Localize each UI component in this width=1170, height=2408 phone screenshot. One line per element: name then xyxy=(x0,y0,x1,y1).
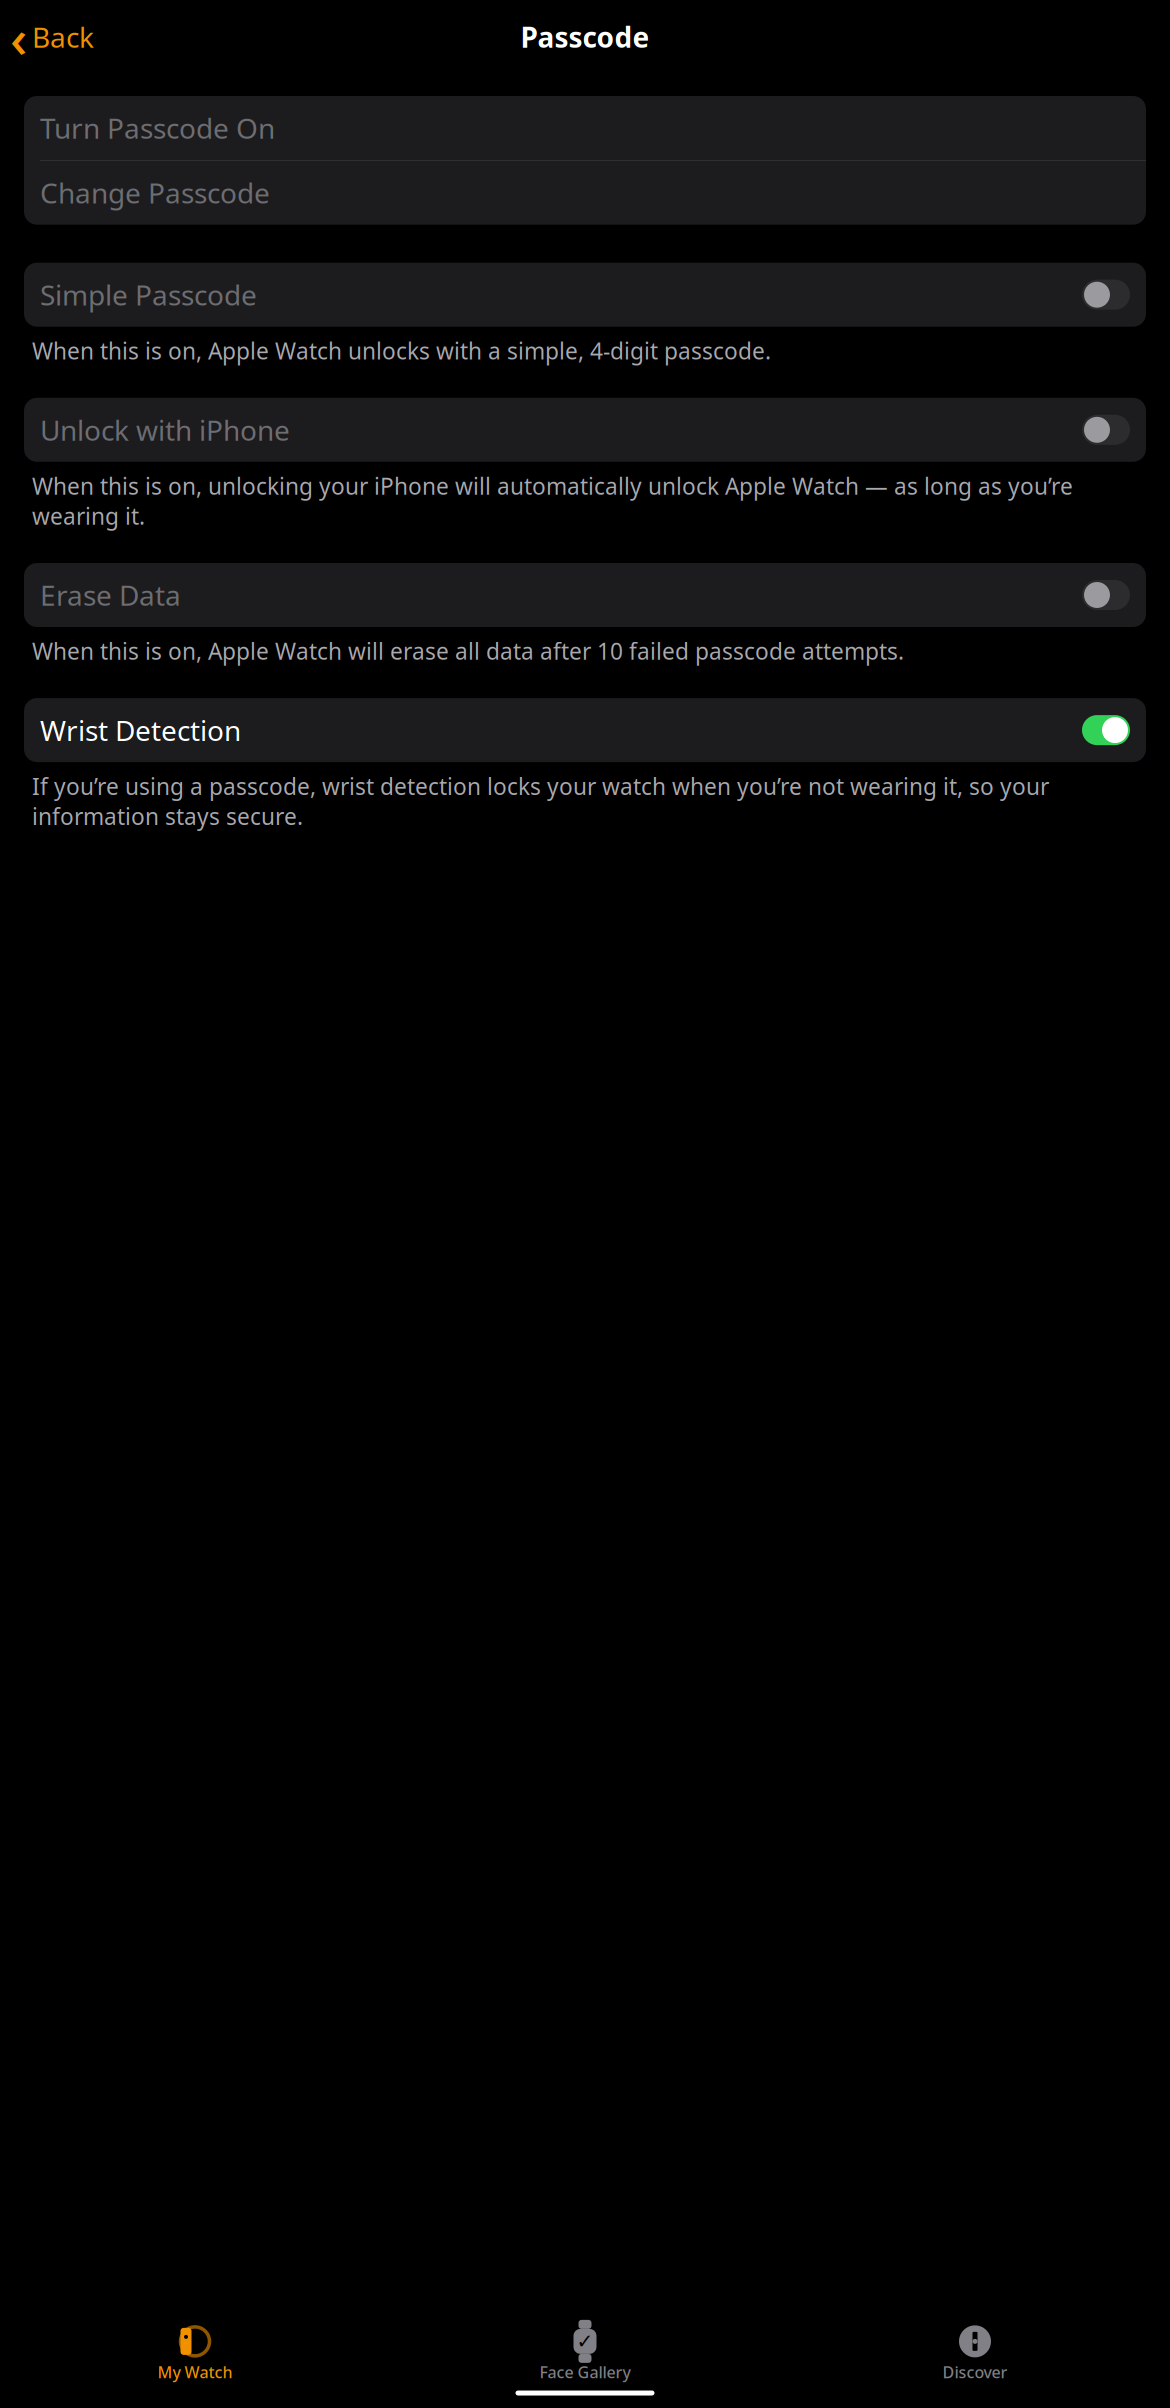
staticText: Erase Data xyxy=(40,576,181,614)
staticText: Unlock with iPhone xyxy=(40,411,290,448)
staticText: Wrist Detection xyxy=(40,711,241,749)
staticText: ‹ xyxy=(10,2,27,72)
staticText: Back xyxy=(32,18,94,56)
button[interactable]: Unlock with iPhone xyxy=(24,398,1146,462)
staticText: Change Passcode xyxy=(40,174,270,211)
staticText: If you’re using a passcode, wrist detect… xyxy=(32,771,1049,831)
button[interactable]: ‹ xyxy=(0,15,104,59)
button[interactable]: Turn Passcode On xyxy=(24,96,1146,160)
button[interactable]: Simple Passcode xyxy=(24,263,1146,327)
staticText: Passcode xyxy=(520,18,649,56)
staticText: ✓ xyxy=(576,2330,593,2353)
button[interactable]: ✓ xyxy=(390,2323,780,2377)
staticText: Discover xyxy=(942,2361,1007,2383)
staticText: Face Gallery xyxy=(539,2361,630,2383)
staticText: When this is on, unlocking your iPhone w… xyxy=(32,471,1073,531)
staticText: When this is on, Apple Watch unlocks wit… xyxy=(32,336,771,366)
button[interactable]: Change Passcode xyxy=(24,161,1146,225)
staticText: Turn Passcode On xyxy=(40,109,275,147)
button[interactable]: My Watch xyxy=(0,2323,390,2377)
button[interactable]: Erase Data xyxy=(24,563,1146,627)
staticText: My Watch xyxy=(157,2361,232,2383)
button[interactable]: Discover xyxy=(780,2323,1170,2377)
staticText: When this is on, Apple Watch will erase … xyxy=(32,636,904,666)
button[interactable]: Wrist Detection xyxy=(24,698,1146,762)
staticText: Simple Passcode xyxy=(40,276,257,313)
